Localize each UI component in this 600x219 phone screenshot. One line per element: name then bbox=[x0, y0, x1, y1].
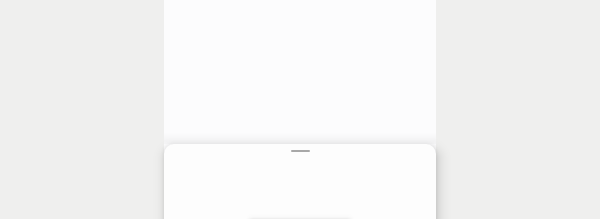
button[interactable]: Primary action bbox=[240, 206, 360, 219]
button[interactable]: Drag handle bbox=[291, 150, 310, 152]
button[interactable]: Drag handle bbox=[164, 144, 436, 219]
